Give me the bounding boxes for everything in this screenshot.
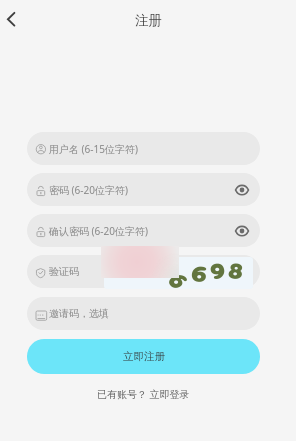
staticText: 9 <box>208 257 227 285</box>
button[interactable]: 确认密码 (6-20位字符) <box>27 214 260 247</box>
staticText: 已有账号？ 立即登录 <box>97 387 190 401</box>
staticText: 6 <box>189 257 210 289</box>
button[interactable]: Back <box>0 5 26 33</box>
staticText: 9 <box>155 268 196 289</box>
staticText: 验证码 <box>49 265 79 278</box>
staticText: 确认密码 (6-20位字符) <box>49 224 148 238</box>
button[interactable]: 立即注册 <box>27 339 260 374</box>
button[interactable]: 已有账号？ 立即登录 <box>91 384 196 404</box>
staticText: 密码 (6-20位字符) <box>49 183 128 197</box>
staticText: 8 <box>226 257 247 286</box>
button[interactable]: Show password <box>234 223 250 239</box>
staticText: 注册 <box>135 12 162 29</box>
staticText: 立即注册 <box>123 350 165 363</box>
staticText: 邀请码，选填 <box>49 307 109 320</box>
button[interactable]: 密码 (6-20位字符) <box>27 173 260 206</box>
button[interactable]: Show password <box>234 182 250 198</box>
staticText: 用户名 (6-15位字符) <box>49 142 138 156</box>
button[interactable]: Refresh captcha <box>104 257 253 289</box>
button[interactable]: 邀请码，选填 <box>27 297 260 330</box>
button[interactable]: 用户名 (6-15位字符) <box>27 132 260 165</box>
button[interactable]: 验证码 <box>27 255 260 288</box>
